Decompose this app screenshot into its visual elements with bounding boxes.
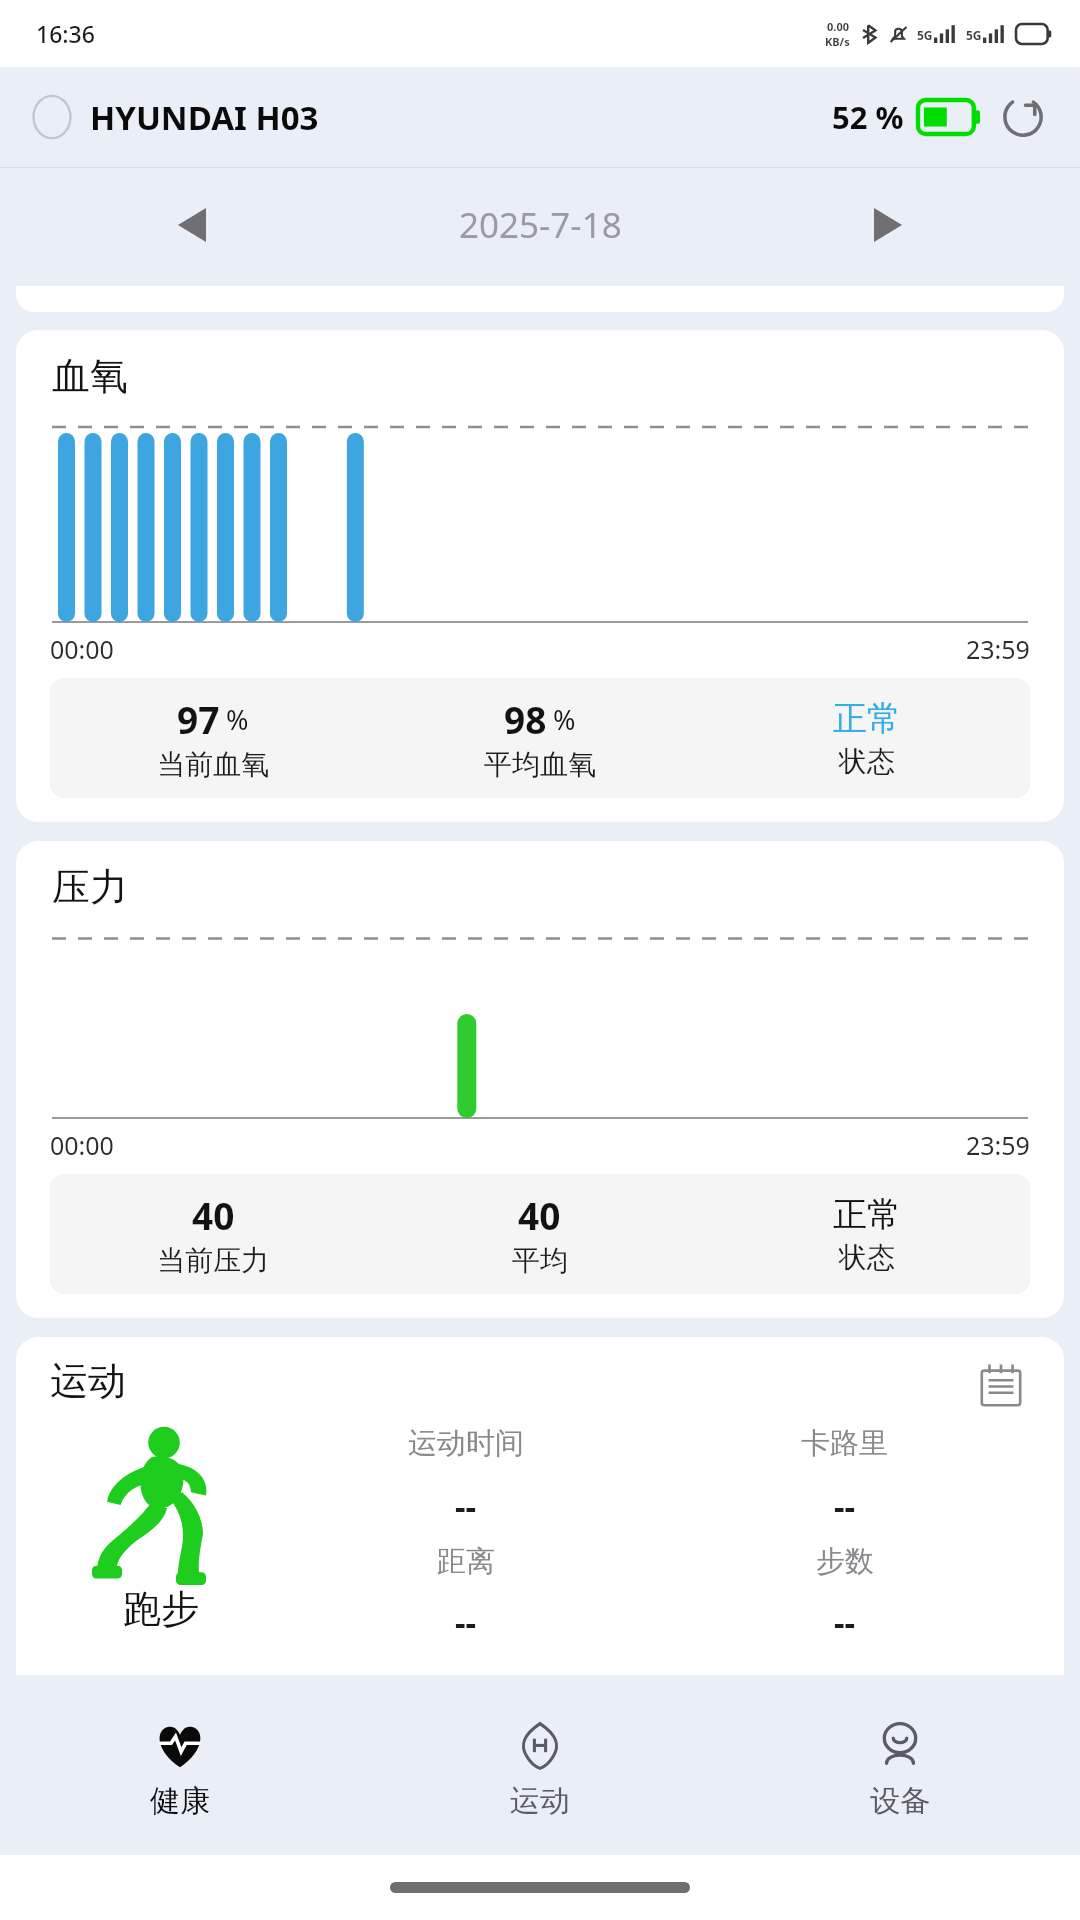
staticText: 当前压力 <box>157 1243 269 1278</box>
staticText: -- <box>455 1600 477 1645</box>
staticText: 40 <box>518 1190 561 1240</box>
staticText: -- <box>455 1484 477 1529</box>
button[interactable]: Refresh <box>996 90 1050 144</box>
staticText: 步数 <box>816 1543 874 1580</box>
staticText: HYUNDAI H03 <box>90 95 319 140</box>
staticText: 状态 <box>839 1240 895 1275</box>
staticText: -- <box>834 1484 856 1529</box>
button[interactable]: 设备 <box>720 1700 1080 1855</box>
staticText: 97 <box>177 694 220 744</box>
staticText: 00:00 <box>50 1128 114 1162</box>
staticText: 0.00 <box>827 19 849 34</box>
staticText: 当前血氧 <box>157 747 269 782</box>
staticText: % <box>553 701 576 738</box>
staticText: 距离 <box>437 1543 495 1580</box>
staticText: 卡路里 <box>801 1425 888 1462</box>
staticText: 52 % <box>832 96 904 138</box>
staticText: 40 <box>192 1190 235 1240</box>
button[interactable]: Previous day <box>160 193 224 257</box>
button[interactable]: Next day <box>856 193 920 257</box>
staticText: 平均血氧 <box>484 747 596 782</box>
button[interactable]: Records <box>972 1357 1030 1415</box>
staticText: -- <box>834 1600 856 1645</box>
staticText: 5G <box>966 27 982 43</box>
staticText: 压力 <box>52 863 128 911</box>
staticText: 2025-7-18 <box>459 201 622 249</box>
button[interactable]: 血氧 <box>16 330 1064 822</box>
staticText: 正常 <box>833 697 901 740</box>
button[interactable]: 健康 <box>0 1700 360 1855</box>
staticText: 运动时间 <box>408 1425 524 1462</box>
staticText: 平均 <box>512 1243 568 1278</box>
button[interactable]: 运动 <box>360 1700 720 1855</box>
staticText: 23:59 <box>966 1128 1030 1162</box>
button[interactable]: 压力 <box>16 841 1064 1318</box>
staticText: 血氧 <box>52 352 128 400</box>
staticText: 运动 <box>510 1782 570 1820</box>
staticText: % <box>226 701 249 738</box>
staticText: 00:00 <box>50 632 114 666</box>
staticText: 正常 <box>833 1193 901 1236</box>
staticText: 设备 <box>870 1782 930 1820</box>
staticText: 状态 <box>839 744 895 779</box>
button[interactable]: 运动 <box>16 1337 1064 1675</box>
staticText: KB/s <box>825 34 850 49</box>
staticText: 5G <box>917 27 933 43</box>
staticText: 16:36 <box>36 18 95 49</box>
staticText: 98 <box>504 694 547 744</box>
staticText: 跑步 <box>123 1585 199 1633</box>
staticText: 23:59 <box>966 632 1030 666</box>
staticText: 健康 <box>150 1782 210 1820</box>
staticText: 运动 <box>50 1357 126 1405</box>
